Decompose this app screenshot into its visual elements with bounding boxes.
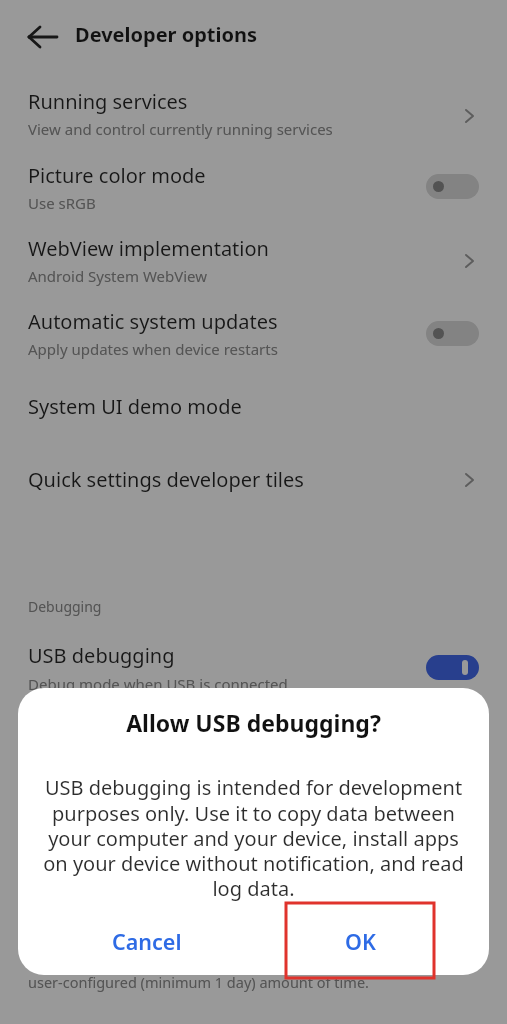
- button[interactable]: [426, 321, 479, 346]
- button[interactable]: OK: [312, 919, 408, 963]
- button[interactable]: System UI demo mode: [0, 383, 507, 429]
- staticText: Picture color mode: [28, 162, 206, 189]
- staticText: Quick settings developer tiles: [28, 466, 304, 493]
- button[interactable]: [426, 174, 479, 199]
- button[interactable]: Quick settings developer tiles: [0, 456, 507, 502]
- staticText: Developer options: [75, 21, 258, 48]
- staticText: WebView implementation: [28, 235, 269, 262]
- staticText: Allow USB debugging?: [18, 707, 489, 738]
- staticText: System UI demo mode: [28, 393, 242, 420]
- staticText: View and control currently running servi…: [28, 119, 333, 139]
- button[interactable]: USB debugging: [0, 632, 507, 704]
- button[interactable]: Automatic system updates: [0, 298, 507, 369]
- staticText: Cancel: [112, 927, 182, 956]
- staticText: Android System WebView: [28, 266, 208, 286]
- staticText: USB debugging is intended for developmen…: [18, 774, 489, 901]
- staticText: Apply updates when device restarts: [28, 339, 278, 359]
- staticText: OK: [345, 927, 376, 956]
- button[interactable]: [28, 26, 58, 48]
- button[interactable]: Running services: [0, 78, 507, 149]
- button[interactable]: [426, 655, 479, 680]
- staticText: Automatic system updates: [28, 308, 278, 335]
- staticText: Use sRGB: [28, 193, 96, 213]
- button[interactable]: Cancel: [95, 919, 199, 963]
- button[interactable]: Picture color mode: [0, 152, 507, 223]
- staticText: Debugging: [28, 597, 102, 616]
- staticText: USB debugging: [28, 642, 175, 669]
- staticText: Running services: [28, 88, 188, 115]
- button[interactable]: WebView implementation: [0, 225, 507, 296]
- staticText: user-configured (minimum 1 day) amount o…: [28, 972, 369, 992]
- staticText: Debug mode when USB is connected: [28, 674, 288, 694]
